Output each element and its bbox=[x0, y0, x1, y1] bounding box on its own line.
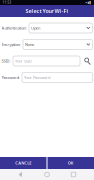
staticText: Select Your Wi-Fi bbox=[25, 7, 68, 15]
staticText: 11:53 bbox=[2, 1, 11, 4]
staticText: Open bbox=[31, 25, 40, 31]
button[interactable]: CANCLE bbox=[0, 157, 46, 169]
staticText: CANCLE bbox=[15, 160, 31, 166]
button[interactable]: Your Password bbox=[22, 72, 92, 82]
button[interactable]: Your SSID bbox=[13, 56, 80, 66]
staticText: SSID: bbox=[1, 58, 10, 64]
staticText: Your SSID bbox=[15, 58, 32, 64]
button[interactable]: Scan for networks bbox=[82, 56, 92, 66]
button[interactable]: OK bbox=[47, 157, 94, 169]
staticText: ▾ ▮ ▌ bbox=[85, 1, 91, 4]
staticText: Your Password bbox=[24, 75, 50, 80]
staticText: OK bbox=[68, 160, 74, 166]
staticText: Encryption: bbox=[1, 42, 20, 47]
staticText: Authentication: bbox=[1, 25, 26, 31]
button[interactable]: Recents bbox=[67, 169, 79, 180]
button[interactable]: Home bbox=[41, 169, 53, 180]
button[interactable]: Open bbox=[29, 23, 92, 33]
staticText: None bbox=[25, 42, 34, 47]
staticText: Password: bbox=[1, 75, 19, 80]
button[interactable]: Back bbox=[14, 169, 26, 180]
button[interactable]: None bbox=[23, 39, 92, 49]
